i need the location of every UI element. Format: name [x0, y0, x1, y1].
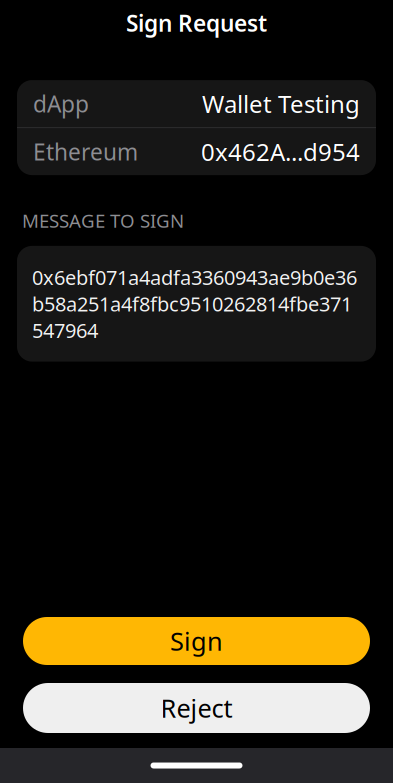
staticText: Reject	[160, 691, 232, 725]
staticText: Sign Request	[126, 8, 267, 38]
staticText: 0x462A...d954	[201, 136, 360, 168]
staticText: Sign	[170, 624, 223, 658]
button[interactable]: Reject	[23, 683, 370, 733]
button[interactable]: Sign	[23, 617, 370, 665]
staticText: Wallet Testing	[202, 88, 360, 120]
staticText: dApp	[33, 89, 89, 119]
staticText: Ethereum	[33, 137, 138, 167]
staticText: 0x6ebf071a4adfa3360943ae9b0e36b58a251a4f…	[32, 264, 357, 344]
staticText: MESSAGE TO SIGN	[22, 208, 184, 233]
